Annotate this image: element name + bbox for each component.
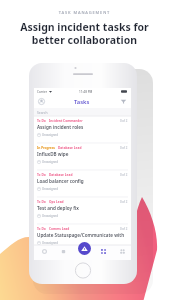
staticText: Database Lead: [58, 146, 82, 150]
staticText: To Do: [37, 227, 46, 231]
staticText: 0 of 2: [120, 146, 128, 150]
staticText: InfluxDB wipe: [37, 151, 69, 157]
staticText: Unassigned: [42, 214, 59, 218]
staticText: Carrier: [37, 90, 48, 94]
button[interactable]: Filter: [119, 97, 128, 106]
staticText: Incident Commander: [49, 119, 83, 123]
staticText: To Do: [37, 200, 46, 204]
staticText: Load balancer config: [37, 178, 84, 184]
staticText: To Do: [37, 119, 46, 123]
staticText: 11:48 PM: [79, 90, 93, 94]
staticText: 0 of 2: [120, 119, 128, 123]
button[interactable]: Report incident: [78, 242, 91, 255]
staticText: Test and deploy fix: [37, 205, 79, 211]
staticText: To Do: [37, 173, 46, 177]
staticText: Unassigned: [42, 160, 59, 164]
staticText: TASK MANAGEMENT: [0, 10, 169, 15]
button[interactable]: To Do: [34, 198, 131, 225]
staticText: Assign incident tasks for better collabo…: [0, 20, 169, 47]
staticText: Unassigned: [42, 133, 59, 137]
button[interactable]: To Do: [34, 171, 131, 198]
staticText: Ops Lead: [49, 200, 64, 204]
button[interactable]: Home: [40, 247, 49, 256]
staticText: In Progress: [37, 146, 55, 150]
staticText: Update Statuspage/Communicate with users: [37, 232, 128, 238]
button[interactable]: Search: [34, 108, 131, 116]
staticText: Unassigned: [42, 241, 59, 245]
button[interactable]: Timeline: [59, 247, 68, 256]
button[interactable]: Boards: [99, 247, 108, 256]
staticText: 0 of 2: [120, 227, 128, 231]
staticText: Assign incident roles: [37, 124, 84, 130]
staticText: Comms Lead: [49, 227, 70, 231]
button[interactable]: To Do: [34, 117, 131, 144]
staticText: 0 of 2: [120, 173, 128, 177]
staticText: Unassigned: [42, 187, 59, 191]
button[interactable]: To Do: [34, 225, 131, 252]
staticText: Search: [37, 110, 48, 114]
staticText: 0 of 2: [120, 200, 128, 204]
button[interactable]: In Progress: [34, 144, 131, 171]
button[interactable]: People: [118, 247, 127, 256]
staticText: Tasks: [74, 98, 90, 106]
button[interactable]: Profile: [37, 97, 46, 106]
staticText: Database Lead: [49, 173, 73, 177]
